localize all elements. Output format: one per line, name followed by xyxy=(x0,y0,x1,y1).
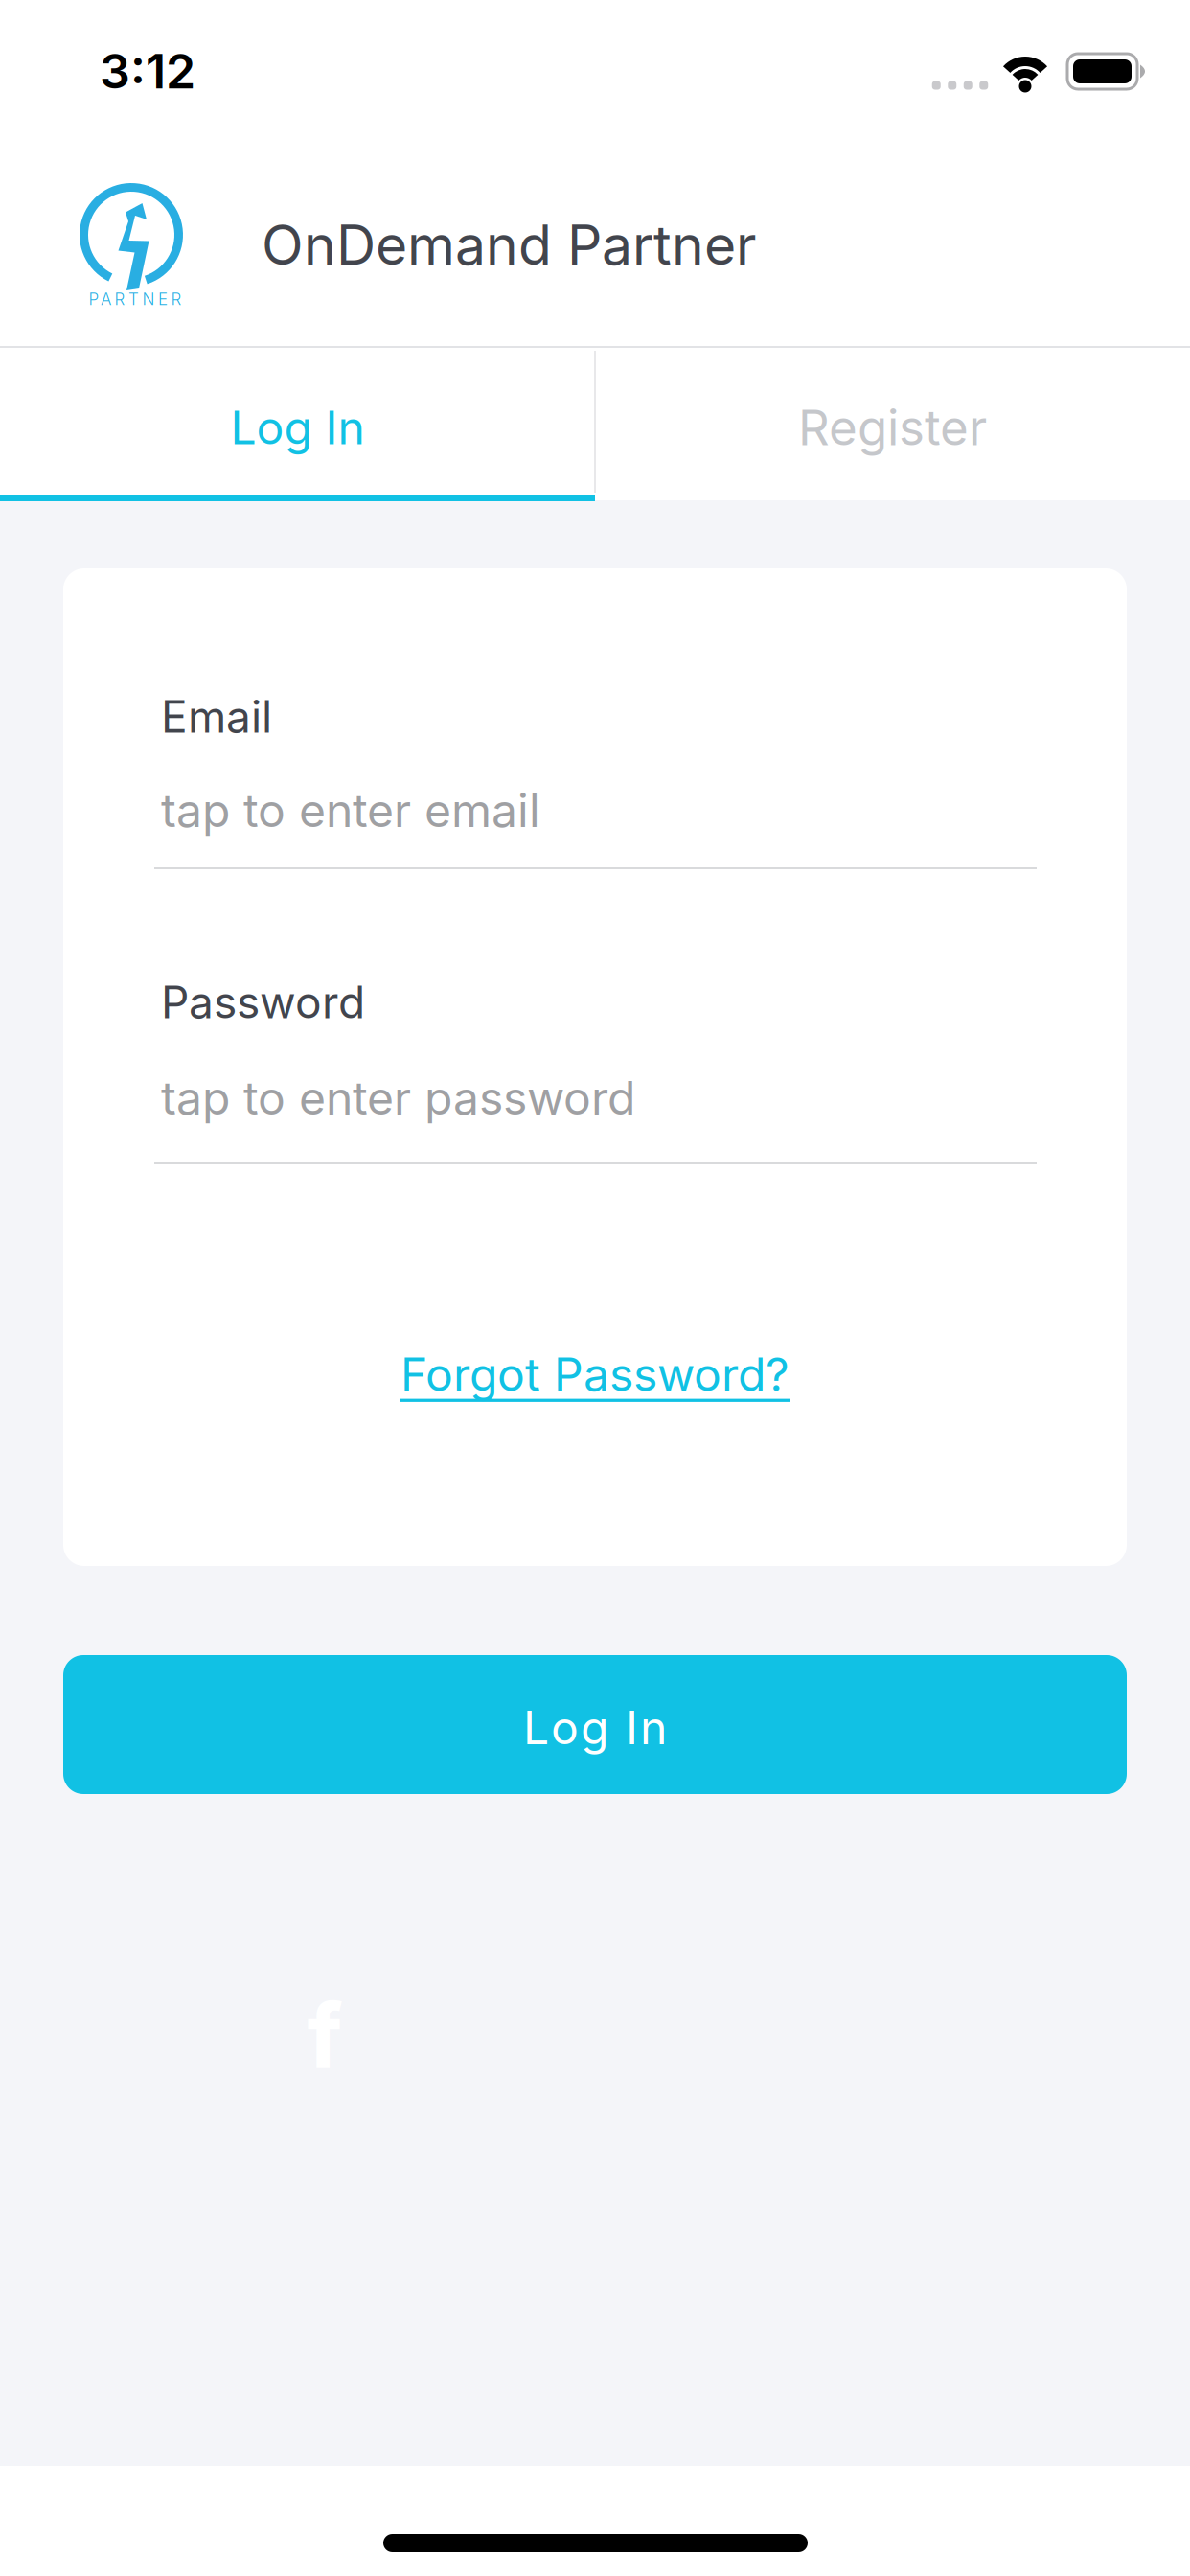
staticText: PARTNER xyxy=(89,289,182,309)
staticText: f xyxy=(307,1982,343,2089)
staticText: tap to enter password xyxy=(161,1070,635,1126)
button[interactable]: Log In xyxy=(63,1655,1127,1794)
staticText: Log In xyxy=(523,1700,667,1755)
button[interactable]: tap to enter password xyxy=(154,1070,1037,1165)
staticText: OnDemand Partner xyxy=(262,212,756,278)
button[interactable]: Register xyxy=(595,352,1190,503)
button[interactable]: Log In xyxy=(0,352,595,503)
staticText: Email xyxy=(161,690,272,743)
staticText: tap to enter email xyxy=(161,782,540,838)
button[interactable]: Log in with Facebook xyxy=(286,1992,363,2079)
staticText: Password xyxy=(161,976,365,1029)
staticText: Register xyxy=(798,398,987,457)
button[interactable]: Forgot Password? xyxy=(260,1326,930,1422)
button[interactable]: tap to enter email xyxy=(154,782,1037,870)
staticText: 3:12 xyxy=(100,42,195,100)
staticText: Forgot Password? xyxy=(400,1346,790,1402)
staticText: Log In xyxy=(230,400,365,455)
